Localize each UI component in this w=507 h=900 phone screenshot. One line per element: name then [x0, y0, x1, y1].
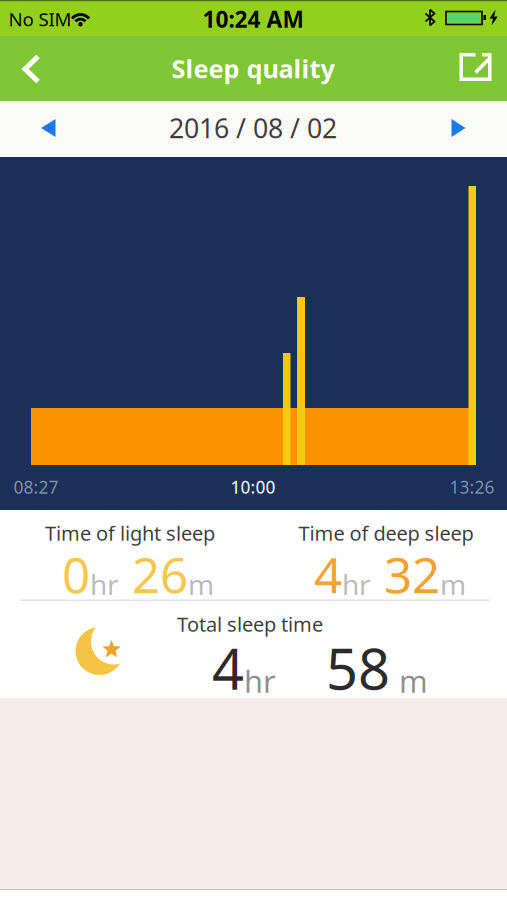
staticText: 10:24 AM	[202, 4, 303, 34]
staticText: m	[399, 660, 428, 701]
staticText: m	[188, 566, 214, 603]
staticText: Time of light sleep	[45, 520, 215, 546]
button[interactable]	[14, 52, 48, 85]
button[interactable]	[455, 49, 495, 85]
staticText: Sleep quality	[171, 52, 334, 85]
staticText: No SIM	[8, 7, 71, 31]
staticText: hr	[342, 566, 371, 603]
staticText	[391, 675, 397, 705]
button[interactable]	[28, 108, 68, 148]
staticText: hr	[244, 660, 276, 701]
staticText: 08:27	[13, 475, 58, 498]
staticText: 4	[212, 631, 244, 705]
staticText: Total sleep time	[177, 611, 323, 637]
staticText: 58	[326, 631, 390, 705]
staticText: 13:26	[449, 475, 494, 498]
staticText: 26	[132, 541, 188, 607]
staticText: 0	[62, 541, 90, 607]
staticText: 4	[314, 541, 342, 607]
staticText	[298, 675, 304, 705]
staticText: m	[440, 566, 466, 603]
staticText: Time of deep sleep	[298, 520, 473, 546]
staticText: 2016 / 08 / 02	[169, 110, 337, 146]
staticText: hr	[90, 566, 119, 603]
staticText: 32	[384, 541, 440, 607]
button[interactable]	[438, 108, 478, 148]
staticText: 10:00	[230, 475, 275, 498]
